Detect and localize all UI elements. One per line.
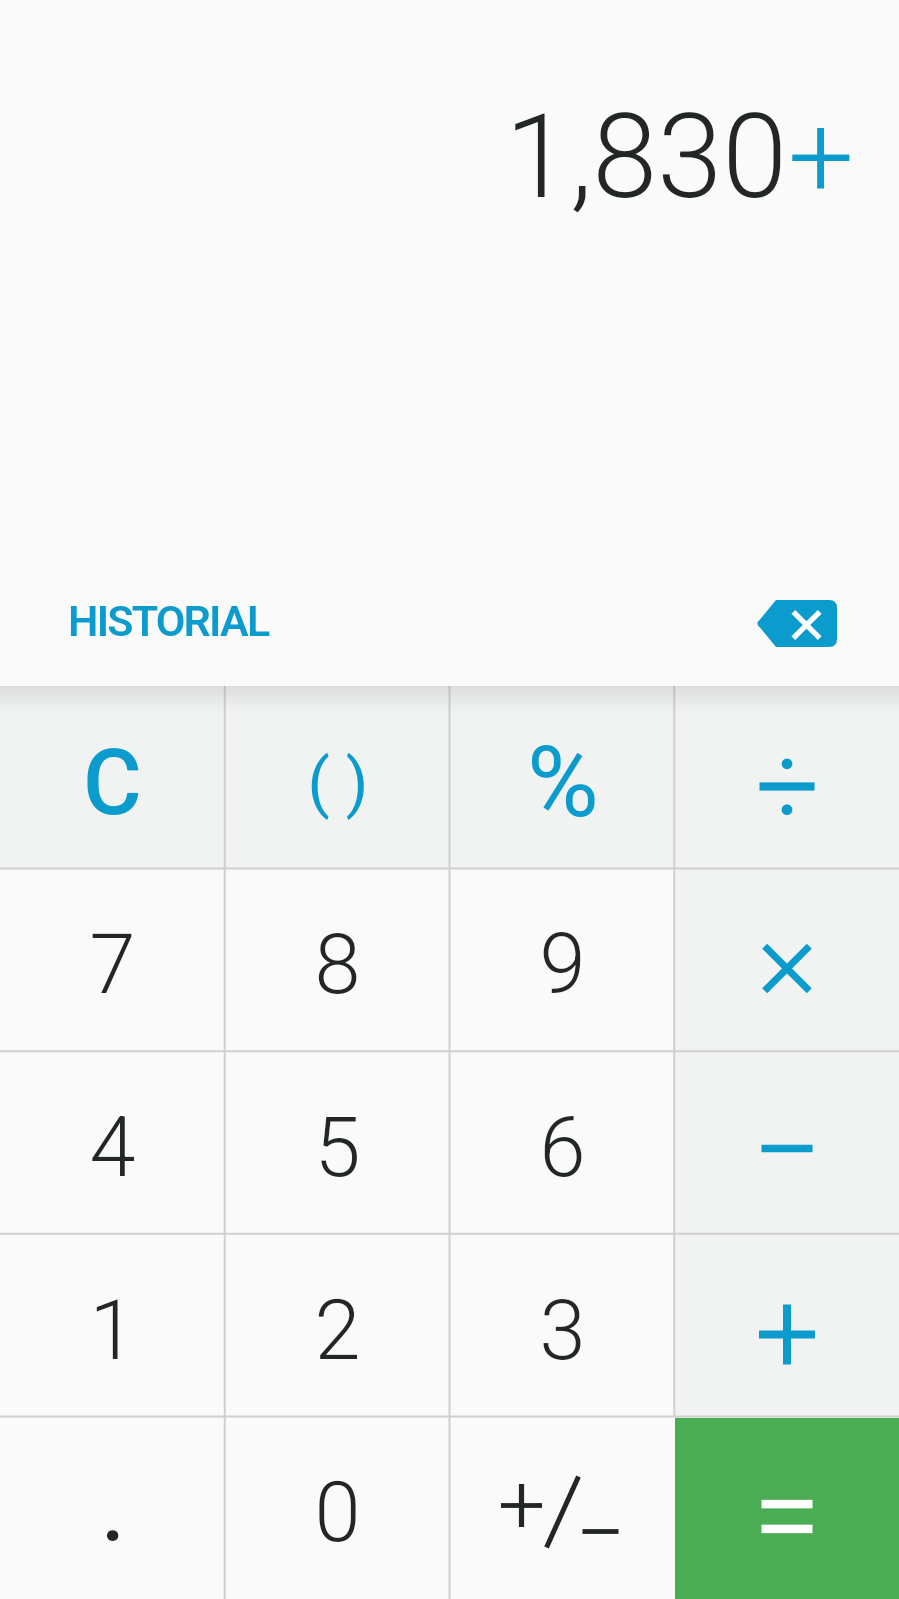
button[interactable]: Minus xyxy=(675,1052,899,1235)
button[interactable]: % xyxy=(450,686,675,869)
button[interactable]: 8 xyxy=(225,869,450,1052)
button[interactable]: Equals xyxy=(675,1418,899,1599)
button[interactable]: 0 xyxy=(225,1418,450,1599)
button[interactable]: Plus xyxy=(675,1235,899,1418)
staticText: % xyxy=(527,725,599,840)
button[interactable]: Backspace xyxy=(738,565,854,681)
button[interactable]: HISTORIAL xyxy=(42,578,295,664)
staticText: C xyxy=(83,731,142,836)
button[interactable]: 3 xyxy=(450,1235,675,1418)
staticText: 4 xyxy=(89,1099,136,1196)
button[interactable]: Divide xyxy=(675,686,899,869)
button[interactable]: 9 xyxy=(450,869,675,1052)
button[interactable]: 6 xyxy=(450,1052,675,1235)
button[interactable]: 4 xyxy=(0,1052,225,1235)
button[interactable]: C xyxy=(0,686,225,869)
staticText: 7 xyxy=(89,916,136,1013)
staticText: ( ) xyxy=(307,745,369,821)
button[interactable]: Change sign xyxy=(450,1418,675,1599)
staticText: . xyxy=(101,1464,125,1561)
staticText: 0 xyxy=(314,1464,361,1561)
staticText: 1,830 xyxy=(505,88,788,225)
button[interactable]: 5 xyxy=(225,1052,450,1235)
button[interactable]: 2 xyxy=(225,1235,450,1418)
staticText: 3 xyxy=(539,1282,586,1379)
staticText: HISTORIAL xyxy=(68,596,269,646)
staticText: 2 xyxy=(314,1282,361,1379)
button[interactable]: ( ) xyxy=(225,686,450,869)
staticText: 8 xyxy=(314,916,361,1013)
button[interactable]: Multiply xyxy=(675,869,899,1052)
button[interactable]: 1 xyxy=(0,1235,225,1418)
staticText: 5 xyxy=(314,1099,361,1196)
staticText: + xyxy=(788,88,855,225)
button[interactable]: 7 xyxy=(0,869,225,1052)
staticText: 1 xyxy=(89,1282,136,1379)
staticText: 9 xyxy=(539,916,586,1013)
button[interactable]: . xyxy=(0,1418,225,1599)
staticText: 6 xyxy=(539,1099,586,1196)
